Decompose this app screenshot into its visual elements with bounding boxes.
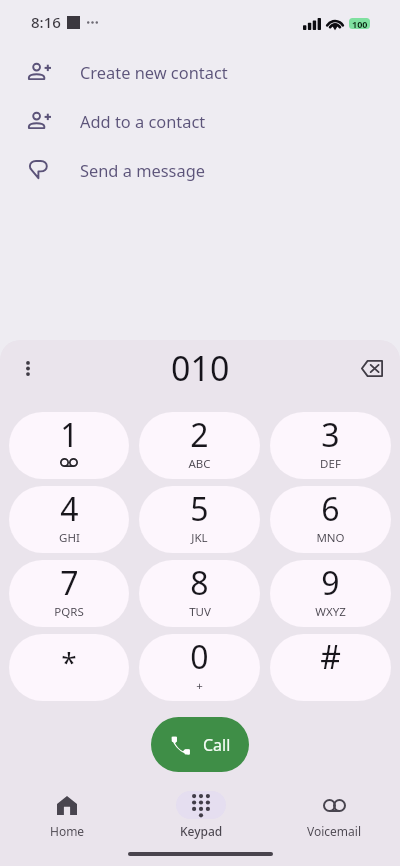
button[interactable]: 2: [139, 412, 260, 479]
button[interactable]: 7: [9, 560, 129, 627]
staticText: 8: [190, 561, 209, 605]
button[interactable]: *: [9, 634, 129, 701]
button[interactable]: 4: [9, 486, 129, 553]
staticText: Call: [203, 734, 231, 756]
button[interactable]: 5: [139, 486, 260, 553]
staticText: ABC: [188, 456, 211, 472]
staticText: 5: [190, 487, 209, 531]
staticText: PQRS: [54, 604, 84, 620]
staticText: WXYZ: [315, 604, 346, 620]
staticText: 1: [60, 413, 79, 457]
button[interactable]: 3: [270, 412, 391, 479]
staticText: 4: [60, 487, 79, 531]
button[interactable]: 1: [9, 412, 129, 479]
staticText: MNO: [316, 530, 345, 546]
staticText: 2: [190, 413, 209, 457]
button[interactable]: Home: [19, 791, 115, 839]
button[interactable]: 8: [139, 560, 260, 627]
button[interactable]: 9: [270, 560, 391, 627]
button[interactable]: #: [270, 634, 391, 701]
button[interactable]: 0: [139, 634, 260, 701]
staticText: #: [320, 635, 341, 679]
button[interactable]: Send a message: [0, 145, 400, 194]
staticText: 0: [190, 635, 209, 679]
staticText: DEF: [320, 456, 341, 472]
button[interactable]: Create new contact: [0, 47, 400, 96]
staticText: 9: [321, 561, 340, 605]
staticText: *: [61, 643, 77, 681]
button[interactable]: More options: [10, 350, 46, 386]
staticText: 3: [321, 413, 340, 457]
staticText: +: [196, 678, 203, 694]
button[interactable]: 6: [270, 486, 391, 553]
staticText: 010: [171, 345, 230, 391]
staticText: Create new contact: [80, 61, 228, 83]
staticText: TUV: [189, 604, 211, 620]
button[interactable]: Call: [151, 717, 249, 772]
staticText: 7: [60, 561, 79, 605]
button[interactable]: Backspace: [352, 348, 392, 388]
staticText: Send a message: [80, 159, 205, 181]
staticText: Voicemail: [307, 823, 361, 839]
button[interactable]: Keypad: [153, 791, 249, 839]
staticText: Keypad: [180, 823, 223, 839]
staticText: GHI: [59, 530, 80, 546]
staticText: 8:16: [31, 12, 61, 32]
staticText: Add to a contact: [80, 110, 206, 132]
button[interactable]: Voicemail: [286, 791, 382, 839]
staticText: 100: [352, 18, 368, 29]
staticText: 6: [321, 487, 340, 531]
staticText: JKL: [191, 530, 208, 546]
button[interactable]: Add to a contact: [0, 96, 400, 145]
staticText: Home: [50, 823, 85, 839]
